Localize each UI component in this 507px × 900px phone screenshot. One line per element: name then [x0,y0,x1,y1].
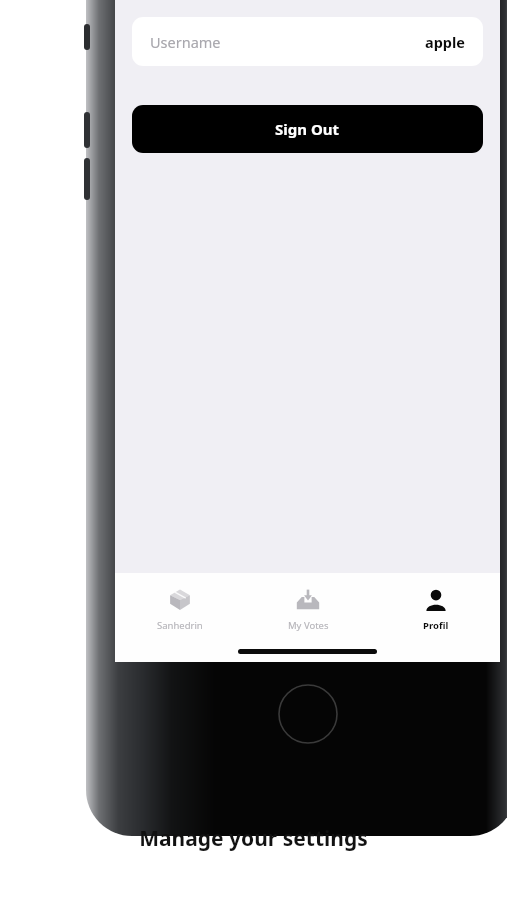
other: Home [278,684,338,744]
button[interactable]: Sign Out [132,105,483,153]
staticText: Sign Out [275,119,340,139]
button[interactable]: Sanhedrin [115,581,244,638]
button[interactable]: Profil [372,581,500,638]
staticText: Sanhedrin [157,619,203,632]
staticText: Profil [423,619,449,632]
staticText: Manage your settings [0,824,507,853]
staticText: My Votes [288,619,329,632]
staticText: Username [150,32,221,52]
button[interactable]: My Votes [244,581,372,638]
button[interactable]: Username [132,17,483,66]
staticText: apple [425,32,465,52]
